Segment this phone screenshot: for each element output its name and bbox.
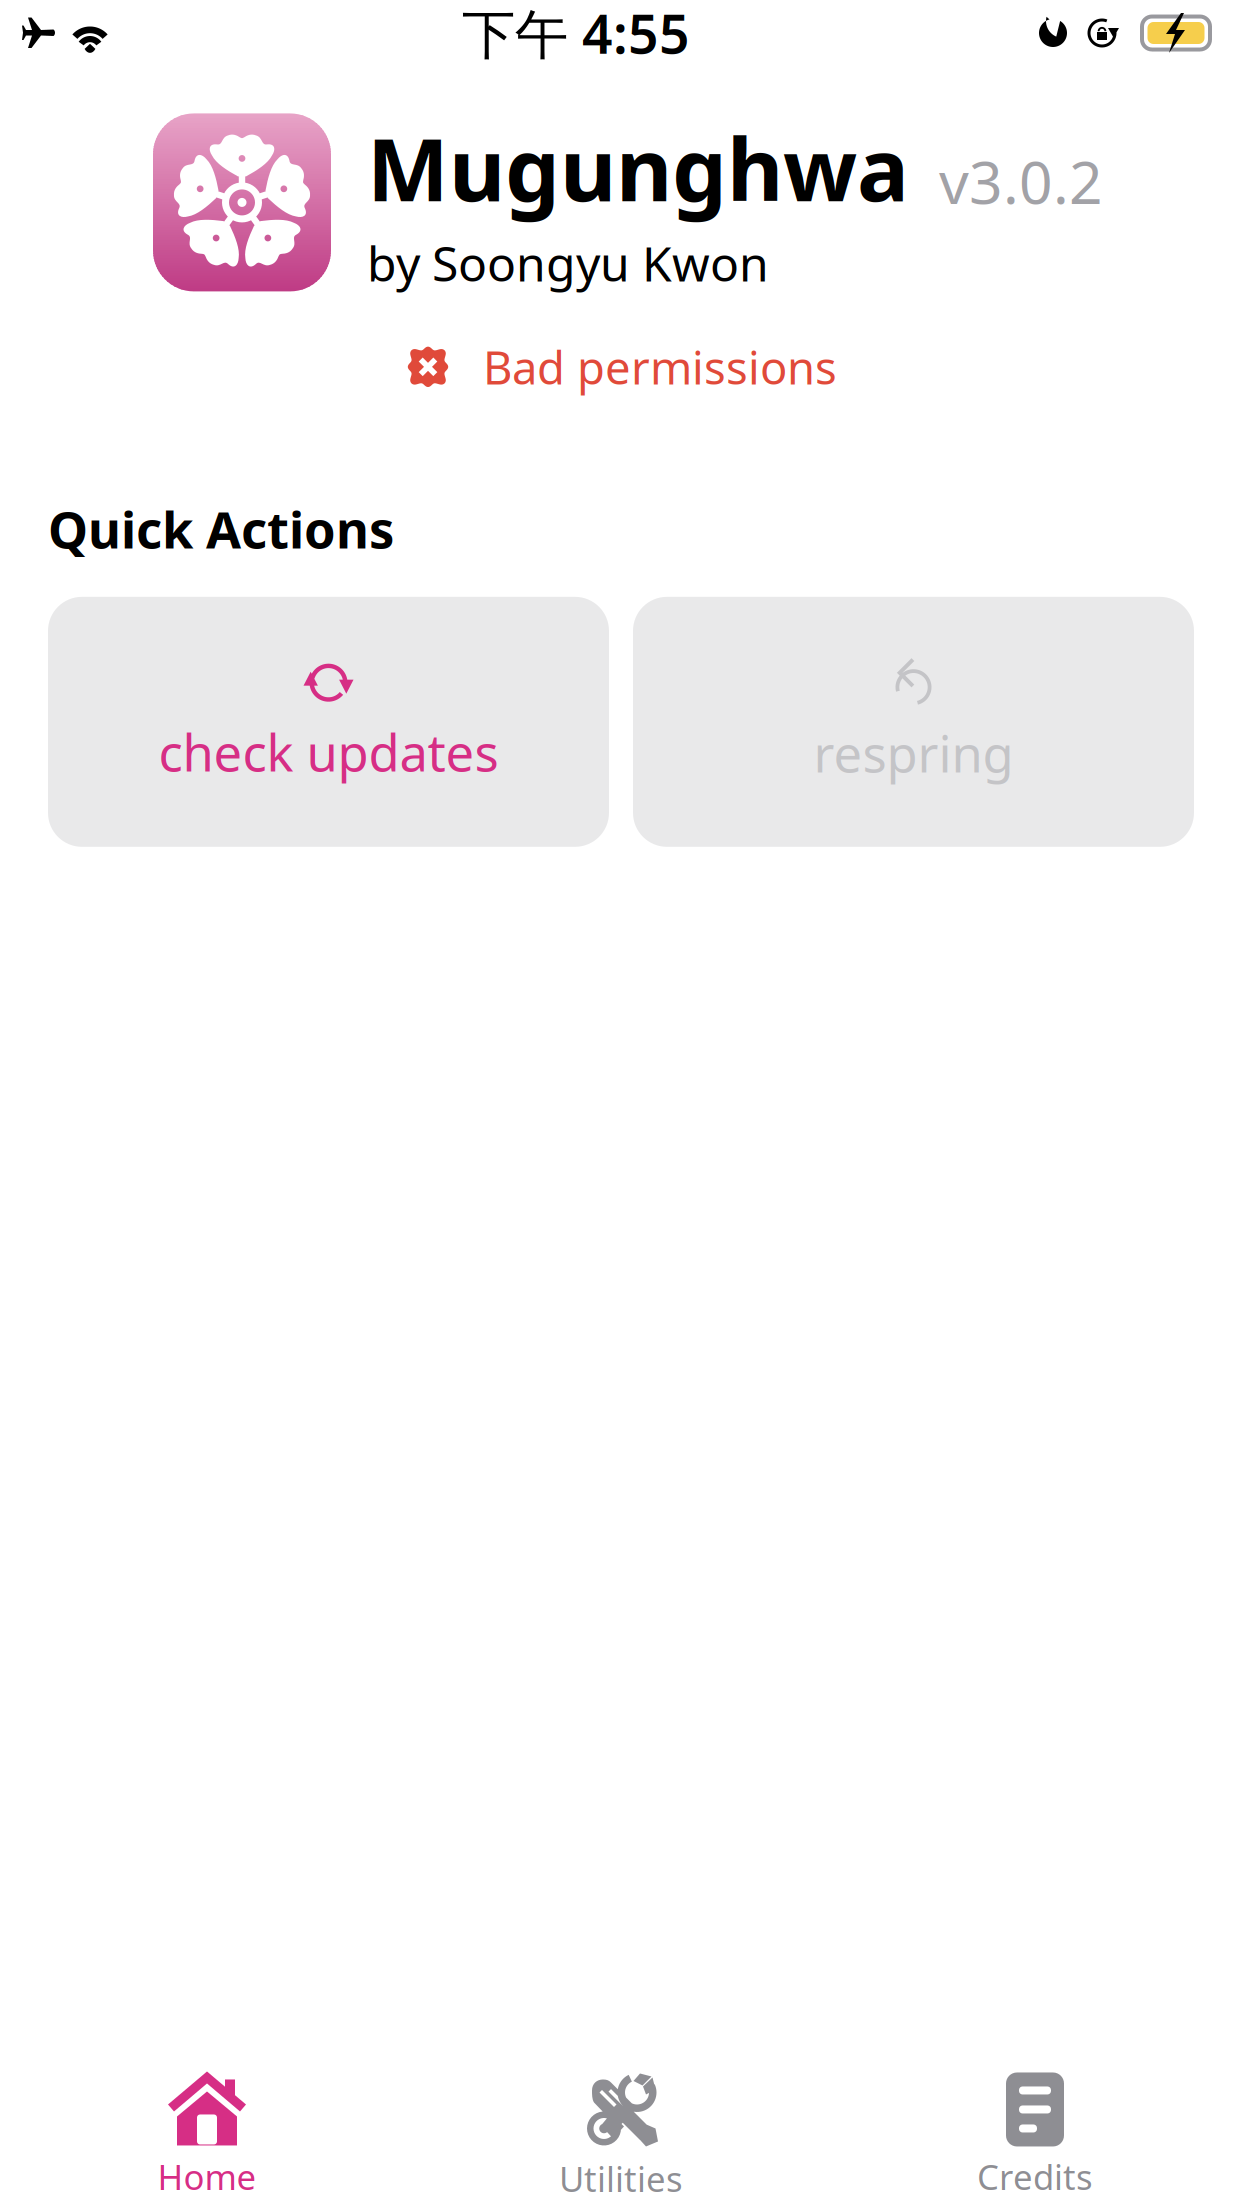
staticText: 下午 4:55: [462, 0, 690, 68]
button[interactable]: Utilities: [414, 2069, 828, 2201]
staticText: Utilities: [559, 2155, 683, 2201]
button[interactable]: Home: [0, 2071, 414, 2199]
staticText: Bad permissions: [483, 337, 837, 397]
staticText: Credits: [977, 2153, 1093, 2199]
staticText: Quick Actions: [48, 495, 394, 562]
button[interactable]: respring: [633, 597, 1194, 847]
button[interactable]: check updates: [48, 597, 609, 847]
staticText: v3.0.2: [939, 142, 1103, 220]
button[interactable]: Credits: [828, 2071, 1242, 2199]
staticText: Home: [157, 2153, 256, 2199]
staticText: Mugunghwa: [367, 110, 909, 225]
staticText: check updates: [158, 718, 498, 785]
staticText: by Soongyu Kwon: [367, 231, 769, 295]
staticText: respring: [813, 719, 1013, 786]
